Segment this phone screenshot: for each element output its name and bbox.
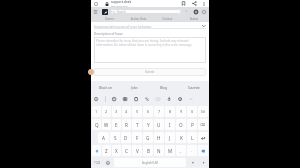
button[interactable]: O: [176, 119, 186, 130]
button[interactable]: Voice input: [164, 93, 175, 105]
button[interactable]: Y: [143, 119, 153, 130]
button[interactable]: More: [186, 93, 197, 105]
button[interactable]: 6: [143, 106, 153, 117]
button[interactable]: ,: [176, 145, 186, 156]
staticText: 5: [136, 109, 139, 114]
button[interactable]: Backspace: [198, 145, 208, 156]
staticText: Q: [95, 122, 99, 128]
staticText: app.acme.com: [111, 4, 128, 7]
staticText: K: [180, 135, 183, 141]
button[interactable]: T: [132, 119, 142, 130]
staticText: Z: [105, 148, 108, 154]
button[interactable]: Clipboard: [131, 93, 142, 105]
button[interactable]: 5: [132, 106, 142, 117]
button[interactable]: B: [143, 145, 153, 156]
staticText: support-desk: [111, 0, 132, 4]
staticText: X: [115, 148, 118, 154]
button[interactable]: Black on: [91, 81, 120, 93]
button[interactable]: Shift: [92, 145, 101, 156]
staticText: Please describe the issue that you are f…: [96, 39, 202, 47]
staticText: F: [136, 135, 139, 141]
button[interactable]: GIF: [120, 93, 131, 105]
staticText: Submit: [145, 70, 155, 74]
button[interactable]: Gazette: [179, 81, 209, 93]
staticText: English (US): [142, 161, 159, 165]
staticText: Jobs: [131, 85, 138, 89]
button[interactable]: H: [154, 132, 164, 143]
button[interactable]: D: [121, 132, 131, 143]
button[interactable]: Settings: [175, 93, 186, 105]
button[interactable]: M: [165, 145, 175, 156]
button[interactable]: Z: [102, 145, 111, 156]
button[interactable]: J: [165, 132, 175, 143]
staticText: ⌫: [200, 123, 206, 127]
button[interactable]: R: [122, 119, 131, 130]
button[interactable]: Stickers: [109, 93, 120, 105]
button[interactable]: ?123: [92, 158, 102, 167]
staticText: Inappropriate guess of user behavior: [94, 24, 202, 28]
button[interactable]: Jobs: [120, 81, 149, 93]
other: Bookmark: [181, 1, 186, 6]
staticText: W: [104, 122, 109, 128]
button[interactable]: N: [154, 145, 164, 156]
button[interactable]: Theme: [153, 93, 164, 105]
button[interactable]: G: [143, 132, 153, 143]
staticText: L: [191, 135, 194, 141]
staticText: 9: [180, 109, 183, 114]
button[interactable]: 9: [176, 106, 186, 117]
staticText: Blog: [160, 85, 168, 89]
staticText: T: [136, 122, 139, 128]
button[interactable]: V: [132, 145, 142, 156]
button[interactable]: Blog: [149, 81, 179, 93]
other: Account: [194, 10, 198, 14]
staticText: 8: [169, 109, 172, 114]
staticText: Del: [201, 110, 206, 114]
button[interactable]: 7: [154, 106, 164, 117]
button[interactable]: U: [154, 119, 164, 130]
button[interactable]: E: [112, 119, 121, 130]
other: Tabs: [94, 2, 98, 6]
button[interactable]: Del: [198, 106, 208, 117]
button[interactable]: 4: [122, 106, 131, 117]
button[interactable]: ⌫: [198, 119, 208, 130]
button[interactable]: F: [132, 132, 142, 143]
button[interactable]: 8: [165, 106, 175, 117]
button[interactable]: English (US): [114, 158, 186, 167]
button[interactable]: 3: [112, 106, 121, 117]
button[interactable]: 2: [102, 106, 111, 117]
button[interactable]: Please describe the issue that you are f…: [94, 37, 206, 63]
button[interactable]: 0: [187, 106, 197, 117]
button[interactable]: P: [187, 119, 197, 130]
button[interactable]: Search: [111, 9, 181, 14]
button[interactable]: L: [187, 132, 197, 143]
button[interactable]: Enter: [198, 132, 208, 143]
button[interactable]: Gboard: [92, 93, 101, 105]
button[interactable]: S: [110, 132, 120, 143]
staticText: Description of Issue: [94, 32, 123, 36]
staticText: M: [168, 148, 173, 154]
button[interactable]: Emoji: [103, 158, 113, 167]
button[interactable]: Chat support: [88, 69, 94, 75]
button[interactable]: K: [176, 132, 186, 143]
other: More options: [202, 2, 206, 6]
button[interactable]: Inappropriate guess of user behavior: [94, 22, 206, 29]
button[interactable]: A: [98, 132, 109, 143]
button[interactable]: Q: [92, 119, 101, 130]
button[interactable]: Next: [198, 158, 208, 167]
button[interactable]: 1: [92, 106, 101, 117]
staticText: Creator: [154, 17, 181, 21]
other: Share: [192, 1, 197, 6]
button[interactable]: C: [122, 145, 131, 156]
button[interactable]: Submit: [94, 68, 206, 76]
staticText: ,: [180, 148, 182, 153]
staticText: N: [157, 148, 161, 154]
button[interactable]: Translate: [142, 93, 153, 105]
other: Secure connection: [105, 2, 109, 6]
button[interactable]: W: [102, 119, 111, 130]
button[interactable]: I: [165, 119, 175, 130]
staticText: 7: [158, 109, 161, 114]
staticText: O: [179, 122, 183, 128]
button[interactable]: X: [112, 145, 121, 156]
button[interactable]: Previous: [187, 158, 197, 167]
